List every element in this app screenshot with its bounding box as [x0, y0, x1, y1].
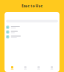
button[interactable]: Home: [5, 66, 19, 69]
staticText: Ease to Use: [21, 4, 42, 8]
button[interactable]: Browse: [19, 66, 32, 69]
button[interactable]: Profile: [45, 66, 58, 69]
button[interactable]: [6, 26, 58, 29]
button[interactable]: [6, 35, 58, 38]
button[interactable]: [6, 30, 58, 34]
button[interactable]: Activity: [32, 66, 45, 69]
